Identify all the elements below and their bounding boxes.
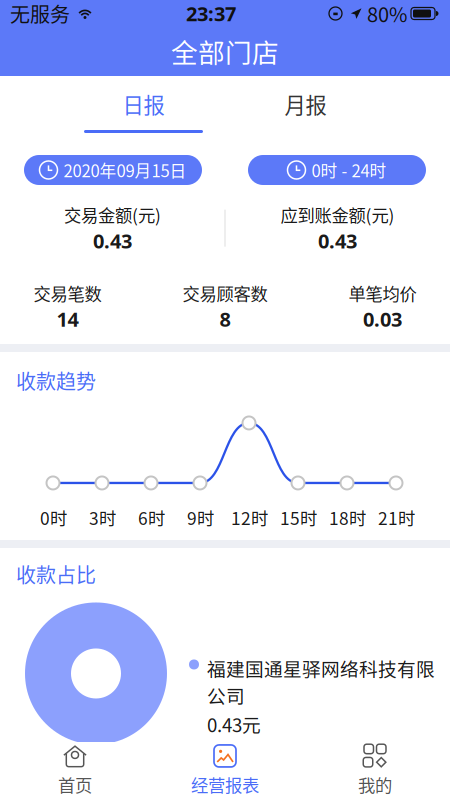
- staticText: 0.43: [93, 227, 132, 254]
- staticText: 月报: [284, 89, 326, 119]
- button[interactable]: 日报: [84, 76, 203, 136]
- button[interactable]: 首页: [0, 742, 150, 800]
- staticText: 交易顾客数: [182, 280, 267, 305]
- button[interactable]: 2020年09月15日: [24, 155, 202, 185]
- button[interactable]: 0时 - 24时: [248, 155, 426, 185]
- staticText: 2020年09月15日: [63, 158, 186, 182]
- staticText: 14: [56, 305, 78, 333]
- staticText: 3时: [89, 505, 116, 530]
- staticText: 福建国通星驿网络科技有限公司: [207, 654, 435, 709]
- staticText: 0时 - 24时: [311, 158, 386, 182]
- staticText: 9时: [187, 505, 214, 530]
- staticText: 单笔均价: [348, 280, 416, 305]
- staticText: 收款趋势: [16, 366, 96, 395]
- staticText: 首页: [58, 772, 92, 797]
- button[interactable]: 月报: [246, 76, 365, 132]
- staticText: 交易金额(元): [64, 202, 161, 227]
- staticText: 80%: [367, 0, 407, 28]
- staticText: 23:37: [186, 0, 236, 27]
- staticText: 0时: [40, 505, 67, 530]
- staticText: 18时: [329, 505, 366, 530]
- staticText: 0.43元: [207, 710, 261, 737]
- staticText: 0.03: [363, 305, 402, 333]
- button[interactable]: 我的: [300, 742, 450, 800]
- staticText: 8: [219, 305, 230, 333]
- button[interactable]: 经营报表: [150, 742, 300, 800]
- staticText: 无服务: [10, 0, 70, 28]
- staticText: 应到账金额(元): [280, 202, 394, 227]
- staticText: 6时: [138, 505, 165, 530]
- staticText: 21时: [378, 505, 415, 530]
- staticText: 日报: [122, 89, 164, 119]
- staticText: 全部门店: [171, 32, 279, 70]
- staticText: 交易笔数: [33, 280, 101, 305]
- staticText: 收款占比: [16, 559, 96, 588]
- staticText: 0.43: [318, 227, 357, 254]
- staticText: 12时: [231, 505, 268, 530]
- staticText: 经营报表: [191, 772, 259, 797]
- staticText: 15时: [280, 505, 317, 530]
- staticText: 我的: [358, 772, 392, 797]
